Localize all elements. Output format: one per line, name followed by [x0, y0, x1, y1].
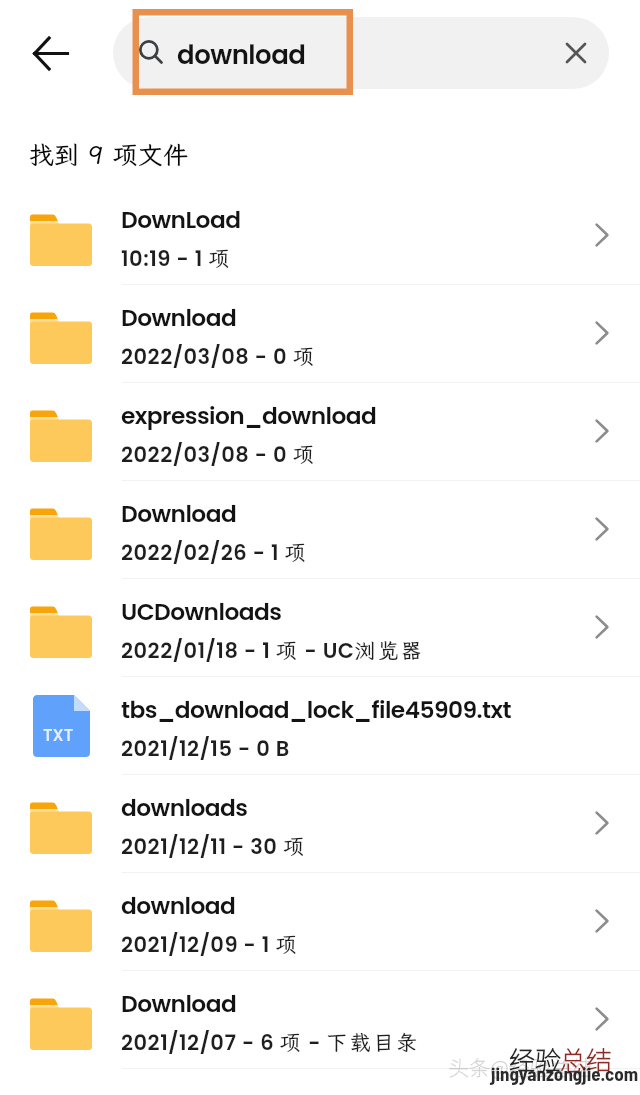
staticText: 2022/03/08 - 0 项	[121, 440, 316, 469]
button[interactable]: download	[0, 873, 640, 971]
button[interactable]: Download	[0, 285, 640, 383]
button[interactable]: UCDownloads	[0, 579, 640, 677]
staticText: 头条@经验总结	[448, 1052, 593, 1082]
staticText: Download	[121, 302, 237, 335]
button[interactable]: DownLoad	[0, 187, 640, 285]
staticText: 10:19 - 1 项	[121, 244, 232, 273]
button[interactable]: TXT	[0, 677, 640, 775]
button[interactable]: Back	[16, 17, 84, 89]
staticText: Download	[121, 498, 237, 531]
button[interactable]: Download	[0, 481, 640, 579]
staticText: Download	[121, 988, 237, 1021]
staticText: download	[177, 37, 306, 73]
staticText: DownLoad	[121, 204, 241, 237]
button[interactable]: Clear search	[553, 30, 599, 76]
button[interactable]: Download	[0, 971, 640, 1069]
button[interactable]: download	[113, 17, 609, 89]
staticText: tbs_download_lock_file45909.txt	[121, 694, 512, 727]
staticText: 2021/12/09 - 1 项	[121, 930, 299, 959]
staticText: TXT	[43, 723, 74, 747]
staticText: UCDownloads	[121, 596, 282, 629]
staticText: download	[121, 890, 236, 923]
staticText: downloads	[121, 792, 248, 825]
staticText: 2022/03/08 - 0 项	[121, 342, 316, 371]
staticText: expression_download	[121, 400, 377, 433]
staticText: 经验	[509, 1040, 562, 1078]
staticText: 2021/12/07 - 6 项 - 下载目录	[121, 1028, 420, 1057]
staticText: 找到 9 项文件	[29, 138, 189, 171]
staticText: 2022/02/26 - 1 项	[121, 538, 308, 567]
staticText: 2021/12/15 - 0 B	[121, 734, 290, 763]
staticText: jingyanzongjie.com	[491, 1062, 639, 1085]
staticText: 2022/01/18 - 1 项 - UC浏览器	[121, 636, 425, 665]
button[interactable]: expression_download	[0, 383, 640, 481]
staticText: 总结	[560, 1040, 613, 1078]
button[interactable]: downloads	[0, 775, 640, 873]
staticText: 2021/12/11 - 30 项	[121, 832, 307, 861]
